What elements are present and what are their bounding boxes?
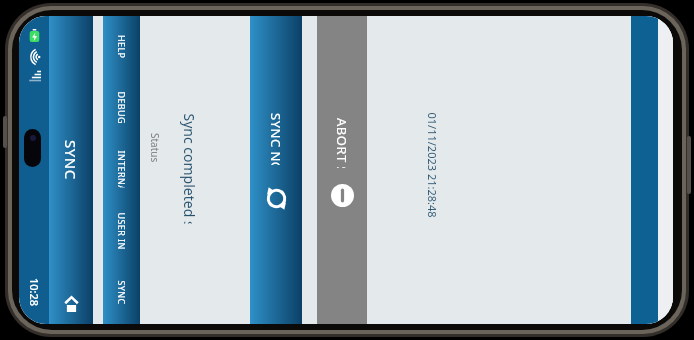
staticText: INTERNAL: [115, 150, 127, 187]
staticText: SYNC: [115, 280, 127, 305]
staticText: Sync completed successfully: [179, 113, 198, 223]
button[interactable]: ABORT SYNC: [317, 16, 367, 324]
staticText: SYNC: [61, 140, 81, 180]
staticText: DEBUG: [115, 91, 127, 124]
button[interactable]: SYNC NOW: [250, 16, 302, 324]
staticText: USER INFO: [115, 212, 127, 249]
staticText: HELP: [116, 35, 128, 59]
staticText: SYNC NOW: [267, 113, 285, 165]
staticText: 10:28: [27, 278, 42, 307]
staticText: Status: [148, 133, 162, 163]
button[interactable]: HELP: [103, 16, 140, 77]
button[interactable]: Back: [51, 284, 91, 324]
button[interactable]: USER INFO: [103, 200, 140, 262]
button[interactable]: SYNC: [103, 262, 140, 324]
staticText: 01/11/2023 21:28:48: [424, 112, 439, 218]
button[interactable]: INTERNAL: [103, 138, 140, 200]
button[interactable]: DEBUG: [103, 77, 140, 138]
staticText: ABORT SYNC: [333, 118, 351, 168]
